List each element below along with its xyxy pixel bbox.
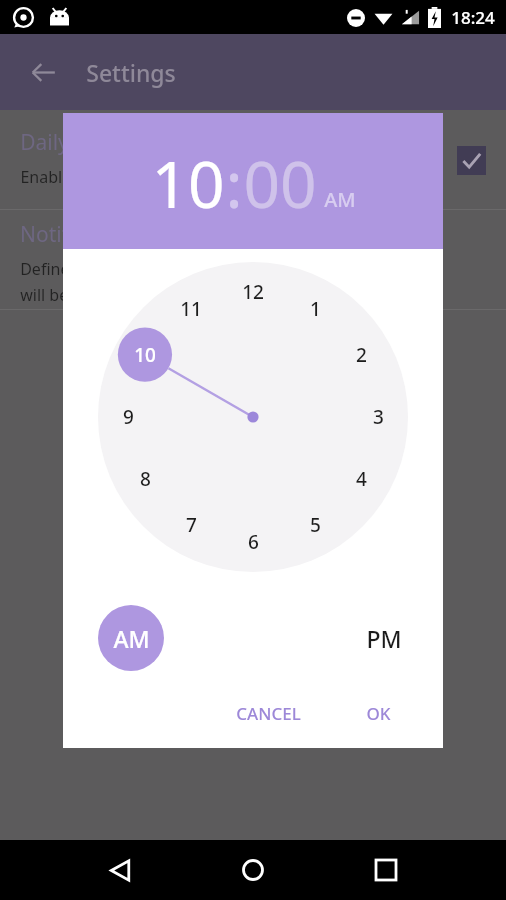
staticText: 4 [356, 466, 367, 492]
staticText: 3 [373, 404, 384, 430]
staticText: 5 [310, 512, 321, 538]
staticText: Settings [86, 57, 176, 88]
staticText: Enable daily reminder [20, 166, 185, 188]
staticText: 18:24 [451, 6, 495, 29]
staticText: OK [366, 702, 391, 725]
button[interactable]: AM [98, 605, 164, 671]
staticText: 11 [180, 296, 202, 322]
button[interactable]: 2 [338, 337, 384, 373]
button[interactable]: Enable daily reminder [449, 138, 493, 182]
button[interactable]: OK [366, 689, 391, 737]
staticText: CANCEL [236, 702, 301, 725]
button[interactable]: 3 [355, 399, 401, 435]
staticText: AM [113, 623, 150, 654]
button[interactable]: 11 [168, 291, 214, 327]
staticText: 2 [356, 342, 367, 368]
button[interactable]: 12 [230, 274, 276, 310]
staticText: PM [366, 623, 402, 654]
button[interactable]: 6 [230, 524, 276, 560]
staticText: 7 [186, 512, 197, 538]
staticText: 9 [123, 404, 134, 430]
staticText: will be shown [20, 284, 122, 306]
staticText: 6 [248, 529, 259, 555]
button[interactable]: 4 [338, 461, 384, 497]
staticText: 12 [242, 279, 264, 305]
button[interactable]: Recent apps [359, 843, 413, 897]
button[interactable]: 10 [151, 140, 225, 227]
button[interactable]: 7 [168, 507, 214, 543]
button[interactable]: 10 [122, 337, 168, 373]
staticText: : [225, 140, 243, 227]
staticText: 10 [134, 342, 156, 368]
button[interactable]: 9 [105, 399, 151, 435]
staticText: 1 [310, 296, 321, 322]
staticText: Daily reminder [20, 128, 166, 157]
button[interactable]: PM [351, 605, 417, 671]
button[interactable]: CANCEL [236, 689, 301, 737]
button[interactable]: Home [226, 843, 280, 897]
staticText: 10 [151, 140, 225, 227]
button[interactable]: 8 [122, 461, 168, 497]
button[interactable]: Navigate up [20, 49, 66, 95]
staticText: 8 [140, 466, 151, 492]
staticText: Notification time [20, 220, 185, 249]
button[interactable]: Back [93, 843, 147, 897]
button[interactable]: 00 [243, 140, 317, 227]
staticText: Define the time at which the notificatio… [20, 258, 322, 280]
button[interactable]: 5 [292, 507, 338, 543]
staticText: AM [324, 186, 356, 213]
button[interactable]: 1 [292, 291, 338, 327]
staticText: 00 [243, 140, 317, 227]
